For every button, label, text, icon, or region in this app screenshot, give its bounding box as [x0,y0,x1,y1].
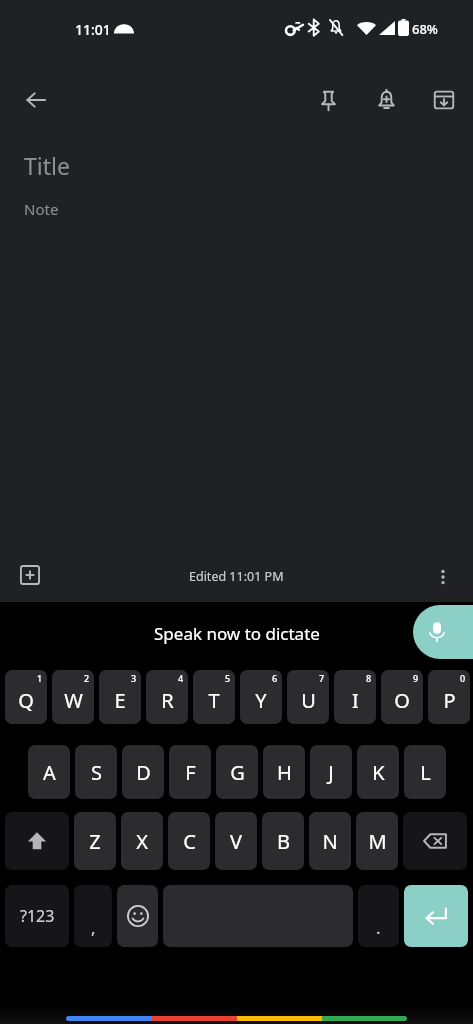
staticText: 7 [319,672,325,684]
staticText: 9 [413,672,419,684]
staticText: 4 [178,672,184,684]
staticText: V [230,828,242,855]
button[interactable]: Symbols [5,885,69,947]
staticText: G [230,759,245,786]
staticText: E [114,687,126,714]
staticText: Y [255,687,267,714]
staticText: 3 [131,672,137,684]
staticText: . [376,916,381,939]
staticText: 11:01 [75,20,111,39]
button[interactable]: Add reminder [360,74,412,126]
staticText: 5 [225,672,231,684]
button[interactable]: Note [24,199,449,219]
staticText: Speak now to dictate [154,622,320,645]
button[interactable]: C [168,812,210,870]
staticText: D [136,759,151,786]
staticText: 0 [460,672,466,684]
button[interactable]: Shift [5,812,69,870]
staticText: P [443,687,456,714]
button[interactable]: L [404,745,446,799]
staticText: 2 [84,672,90,684]
staticText: T [208,687,220,714]
button[interactable]: Add [6,551,54,599]
staticText: I [352,687,359,714]
button[interactable]: Pin [302,74,354,126]
button[interactable]: G [216,745,258,799]
staticText: B [277,828,290,855]
staticText: K [372,759,385,786]
button[interactable]: Title [24,150,449,181]
button[interactable]: Emoji [117,885,158,947]
button[interactable]: Z [74,812,116,870]
button[interactable]: Back [10,74,62,126]
staticText: N [322,828,338,855]
staticText: L [420,759,431,786]
staticText: 1 [37,672,43,684]
button[interactable]: D [122,745,164,799]
button[interactable]: I [334,670,376,724]
button[interactable]: V [215,812,257,870]
button[interactable]: Home gesture bar [66,1016,407,1021]
button[interactable]: R [146,670,188,724]
staticText: R [161,687,174,714]
button[interactable]: Voice input [413,605,473,659]
button[interactable]: Backspace [403,812,467,870]
staticText: Z [89,828,101,855]
button[interactable]: H [263,745,305,799]
staticText: Q [18,687,34,714]
staticText: W [64,687,83,714]
staticText: J [328,759,334,786]
button[interactable]: Archive [418,74,470,126]
staticText: 68% [412,20,438,38]
button[interactable]: Enter [404,885,468,947]
staticText: , [91,916,96,939]
button[interactable]: M [356,812,398,870]
button[interactable]: B [262,812,304,870]
button[interactable]: T [193,670,235,724]
staticText: O [394,687,410,714]
button[interactable]: Y [240,670,282,724]
button[interactable]: U [287,670,329,724]
button[interactable]: X [121,812,163,870]
staticText: 6 [272,672,278,684]
button[interactable]: Q [5,670,47,724]
staticText: Edited 11:01 PM [189,568,284,585]
staticText: H [277,759,292,786]
staticText: F [185,759,196,786]
button[interactable]: Period [358,885,399,947]
button[interactable]: A [28,745,70,799]
button[interactable]: W [52,670,94,724]
staticText: S [91,759,102,786]
staticText: 8 [366,672,372,684]
button[interactable]: K [357,745,399,799]
staticText: M [368,828,387,855]
button[interactable]: P [428,670,470,724]
button[interactable]: S [75,745,117,799]
button[interactable]: O [381,670,423,724]
staticText: X [136,828,148,855]
staticText: A [43,759,56,786]
button[interactable]: E [99,670,141,724]
staticText: U [301,687,316,714]
button[interactable]: F [169,745,211,799]
button[interactable]: J [310,745,352,799]
button[interactable]: Comma [74,885,112,947]
staticText: C [183,828,196,855]
staticText: ?123 [20,905,55,927]
button[interactable]: More options [419,553,467,601]
button[interactable]: N [309,812,351,870]
